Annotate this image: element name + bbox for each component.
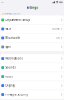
button[interactable]: Sounds — [1, 63, 63, 72]
button[interactable]: Focus — [1, 72, 63, 81]
staticText: Bluetooth — [5, 36, 20, 40]
staticText: Sounds — [5, 66, 15, 69]
staticText: Settings — [26, 6, 37, 9]
staticText: Display — [5, 84, 14, 87]
staticText: Sync — [5, 45, 10, 49]
staticText: Home — [52, 27, 60, 31]
staticText: Wi-Fi — [5, 27, 11, 31]
button[interactable]: Wi-Fi — [1, 25, 63, 33]
staticText: 9:41 — [1, 1, 4, 3]
staticText: Privacy & Security — [5, 93, 27, 96]
button[interactable]: Notifications — [1, 54, 63, 63]
button[interactable]: Privacy & Security — [1, 90, 63, 99]
button[interactable]: Department Setup — [1, 16, 63, 24]
button[interactable]: Display — [1, 81, 63, 90]
staticText: CONNECTIVITY — [2, 12, 21, 15]
button[interactable]: Bluetooth — [1, 34, 63, 42]
staticText: On — [56, 36, 60, 40]
staticText: Focus — [5, 75, 12, 78]
button[interactable]: Sync — [1, 43, 63, 51]
staticText: Notifications — [5, 57, 22, 60]
staticText: Department Setup — [5, 18, 30, 22]
